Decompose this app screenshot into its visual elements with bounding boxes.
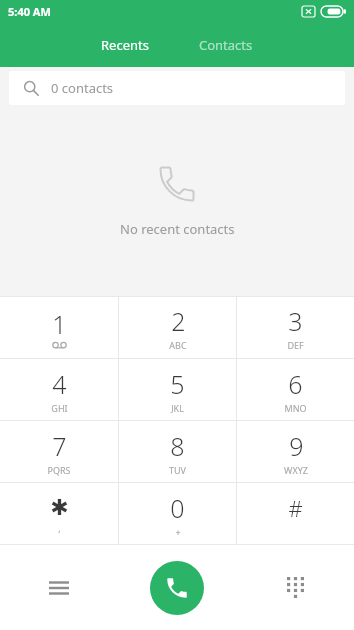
staticText: 3 <box>288 304 303 338</box>
staticText: ✱ <box>50 495 69 521</box>
staticText: , <box>58 522 61 534</box>
staticText: TUV <box>169 464 186 476</box>
button[interactable]: 0 contacts <box>9 71 345 105</box>
staticText: PQRS <box>47 464 71 476</box>
button[interactable]: 3 <box>237 296 354 359</box>
staticText: DEF <box>287 339 304 351</box>
button[interactable]: Dialpad <box>236 545 354 630</box>
button[interactable]: Recents <box>83 26 167 64</box>
staticText: 5 <box>170 367 185 401</box>
button[interactable]: 7 <box>0 421 118 483</box>
button[interactable]: Contacts <box>181 26 271 64</box>
staticText: 8 <box>170 429 185 463</box>
button[interactable]: 6 <box>237 359 354 421</box>
staticText: MNO <box>284 402 307 414</box>
button[interactable]: 1 <box>0 296 118 359</box>
button[interactable]: # <box>237 483 354 545</box>
staticText: Contacts <box>199 36 253 54</box>
staticText: + <box>175 526 181 538</box>
staticText: 9 <box>289 429 304 463</box>
staticText: Recents <box>101 36 149 54</box>
button[interactable]: ✱ <box>0 483 118 545</box>
button[interactable]: 2 <box>119 296 236 359</box>
staticText: 7 <box>52 429 67 463</box>
staticText: 1 <box>52 307 67 341</box>
staticText: 2 <box>171 304 186 338</box>
staticText: ABC <box>169 339 187 351</box>
staticText: No recent contacts <box>120 220 235 238</box>
button[interactable]: Menu <box>0 545 118 630</box>
button[interactable]: 4 <box>0 359 118 421</box>
button[interactable]: 9 <box>237 421 354 483</box>
staticText: 5:40 AM <box>8 4 51 19</box>
button[interactable]: 5 <box>119 359 236 421</box>
staticText: GHI <box>51 402 68 414</box>
staticText: JKL <box>171 402 184 414</box>
staticText: 4 <box>52 367 67 401</box>
button[interactable]: Call <box>150 561 204 615</box>
staticText: # <box>288 493 303 523</box>
staticText: 0 contacts <box>51 79 114 97</box>
staticText: 6 <box>288 367 303 401</box>
staticText: WXYZ <box>284 464 308 476</box>
button[interactable]: 8 <box>119 421 236 483</box>
staticText: 0 <box>170 491 185 525</box>
button[interactable]: 0 <box>119 483 236 545</box>
